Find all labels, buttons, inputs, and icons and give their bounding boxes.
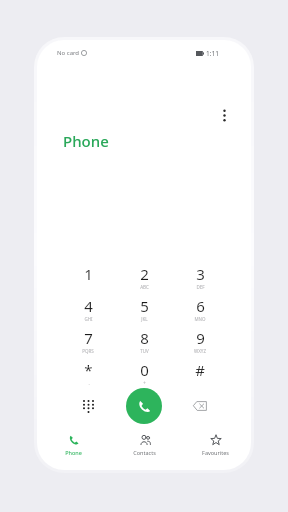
staticText: WXYZ xyxy=(194,348,206,354)
button[interactable]: Call xyxy=(126,388,162,424)
staticText: * xyxy=(84,360,93,380)
staticText: Phone xyxy=(65,449,82,456)
staticText: No card xyxy=(57,49,80,57)
staticText: PQRS xyxy=(82,348,94,354)
button[interactable]: * xyxy=(65,360,111,390)
button[interactable]: 7 xyxy=(65,328,111,358)
staticText: 3 xyxy=(196,264,205,284)
button[interactable]: Favourites xyxy=(180,428,251,470)
staticText: JKL xyxy=(141,316,148,322)
staticText: 8 xyxy=(140,328,149,348)
button[interactable]: # xyxy=(177,360,223,390)
button[interactable]: 4 xyxy=(65,296,111,326)
button[interactable]: 5 xyxy=(121,296,167,326)
staticText: 1:11 xyxy=(206,49,219,58)
staticText: 5 xyxy=(140,296,149,316)
staticText: ABC xyxy=(140,284,149,290)
staticText: Phone xyxy=(63,131,109,151)
staticText: + xyxy=(143,380,146,386)
button[interactable]: Contacts xyxy=(109,428,180,470)
staticText: 4 xyxy=(84,296,93,316)
staticText: DEF xyxy=(196,284,205,290)
staticText: Favourites xyxy=(202,449,229,456)
staticText: 2 xyxy=(140,264,149,284)
staticText: 1 xyxy=(84,264,93,284)
button[interactable]: Backspace xyxy=(185,391,215,421)
staticText: MNO xyxy=(194,316,206,322)
button[interactable]: 0 xyxy=(121,360,167,390)
button[interactable]: 2 xyxy=(121,264,167,294)
button[interactable]: Keypad xyxy=(73,391,103,421)
button[interactable]: Phone xyxy=(37,428,109,470)
button[interactable]: 9 xyxy=(177,328,223,358)
staticText: 7 xyxy=(84,328,93,348)
staticText: TUV xyxy=(140,348,149,354)
button[interactable]: 8 xyxy=(121,328,167,358)
staticText: # xyxy=(195,360,205,380)
button[interactable]: More options xyxy=(212,103,236,127)
staticText: GHI xyxy=(84,316,93,322)
button[interactable]: 1 xyxy=(65,264,111,294)
staticText: 6 xyxy=(196,296,205,316)
button[interactable]: 6 xyxy=(177,296,223,326)
staticText: 9 xyxy=(196,328,205,348)
staticText: Contacts xyxy=(133,449,156,456)
staticText: . xyxy=(88,380,90,386)
button[interactable]: 3 xyxy=(177,264,223,294)
staticText: 0 xyxy=(140,360,149,380)
